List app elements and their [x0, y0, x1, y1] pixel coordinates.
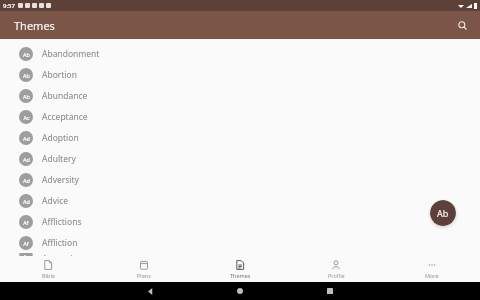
staticText: Ag — [23, 253, 30, 256]
staticText: Ab — [23, 51, 30, 58]
button[interactable]: More — [384, 256, 480, 282]
staticText: Abandonment — [42, 48, 100, 60]
staticText: Themes — [230, 272, 251, 279]
staticText: Profile — [328, 272, 345, 279]
button[interactable]: Ab — [0, 85, 480, 106]
staticText: Abundance — [42, 90, 88, 102]
button[interactable]: Home — [195, 282, 285, 300]
button[interactable]: Ad — [0, 127, 480, 148]
staticText: Af — [23, 219, 29, 226]
button[interactable]: Ac — [0, 106, 480, 127]
staticText: Agnostic — [42, 253, 77, 256]
staticText: Adversity — [42, 174, 79, 186]
staticText: Afflictions — [42, 216, 82, 228]
staticText: Af — [23, 240, 29, 247]
staticText: Affliction — [42, 237, 78, 249]
button[interactable]: Af — [0, 232, 480, 253]
staticText: 9:57 — [3, 2, 15, 10]
button[interactable]: Ad — [0, 148, 480, 169]
staticText: Ac — [23, 114, 30, 121]
staticText: Ad — [23, 177, 30, 184]
staticText: Ab — [23, 93, 30, 100]
button[interactable]: Ab — [0, 64, 480, 85]
staticText: Adoption — [42, 132, 79, 144]
button[interactable]: Plans — [96, 256, 192, 282]
button[interactable]: Bible — [0, 256, 96, 282]
staticText: Plans — [137, 272, 151, 279]
staticText: Ad — [23, 156, 30, 163]
button[interactable]: Recents — [285, 282, 375, 300]
staticText: Abortion — [42, 69, 77, 81]
button[interactable]: Af — [0, 211, 480, 232]
staticText: Ab — [437, 207, 449, 219]
staticText: Adultery — [42, 153, 76, 165]
button[interactable]: Ad — [0, 190, 480, 211]
button[interactable]: Ab — [0, 43, 480, 64]
button[interactable]: Back — [105, 282, 195, 300]
staticText: Ab — [23, 72, 30, 79]
button[interactable]: Search — [452, 15, 472, 35]
button[interactable]: Ag — [0, 253, 480, 256]
button[interactable]: Ab — [430, 200, 456, 226]
staticText: More — [425, 272, 439, 279]
staticText: Themes — [14, 18, 55, 33]
staticText: Ad — [23, 198, 30, 205]
button[interactable]: Ad — [0, 169, 480, 190]
button[interactable]: Themes — [192, 256, 288, 282]
button[interactable]: Profile — [288, 256, 384, 282]
staticText: Advice — [42, 195, 69, 207]
staticText: Bible — [42, 272, 55, 279]
staticText: Ad — [23, 135, 30, 142]
staticText: Acceptance — [42, 111, 88, 123]
